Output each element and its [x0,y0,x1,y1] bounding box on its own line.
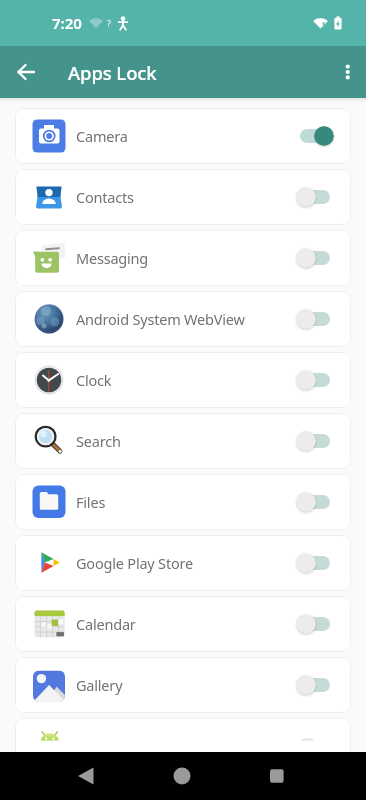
button[interactable] [296,368,334,392]
button[interactable] [296,307,334,331]
button[interactable] [296,673,334,697]
button[interactable] [15,718,351,752]
staticText: Apps Lock [68,60,157,85]
button[interactable] [14,60,38,84]
button[interactable] [253,752,301,800]
button[interactable]: Gallery [15,657,351,713]
button[interactable] [62,752,110,800]
button[interactable]: Messaging [15,230,351,286]
staticText: Search [76,431,121,451]
button[interactable] [296,429,334,453]
button[interactable] [296,612,334,636]
button[interactable]: Search [15,413,351,469]
button[interactable]: Camera [15,108,351,164]
staticText: Android System WebView [76,309,245,329]
staticText: Camera [76,126,128,146]
staticText: Messaging [76,248,149,268]
button[interactable]: Files [15,474,351,530]
button[interactable] [296,246,334,270]
button[interactable]: Calendar [15,596,351,652]
staticText: 7:20 [52,13,82,33]
button[interactable] [158,752,206,800]
staticText: Files [76,492,106,512]
button[interactable] [296,551,334,575]
button[interactable] [296,124,334,148]
button[interactable] [296,185,334,209]
button[interactable] [332,58,360,86]
staticText: Google Play Store [76,553,193,573]
button[interactable]: Android System WebView [15,291,351,347]
button[interactable]: Google Play Store [15,535,351,591]
button[interactable] [296,490,334,514]
staticText: Clock [76,370,112,390]
staticText: ? [107,17,111,29]
staticText: Calendar [76,614,136,634]
staticText: Gallery [76,675,123,695]
button[interactable]: Clock [15,352,351,408]
staticText: Contacts [76,187,134,207]
button[interactable]: Contacts [15,169,351,225]
